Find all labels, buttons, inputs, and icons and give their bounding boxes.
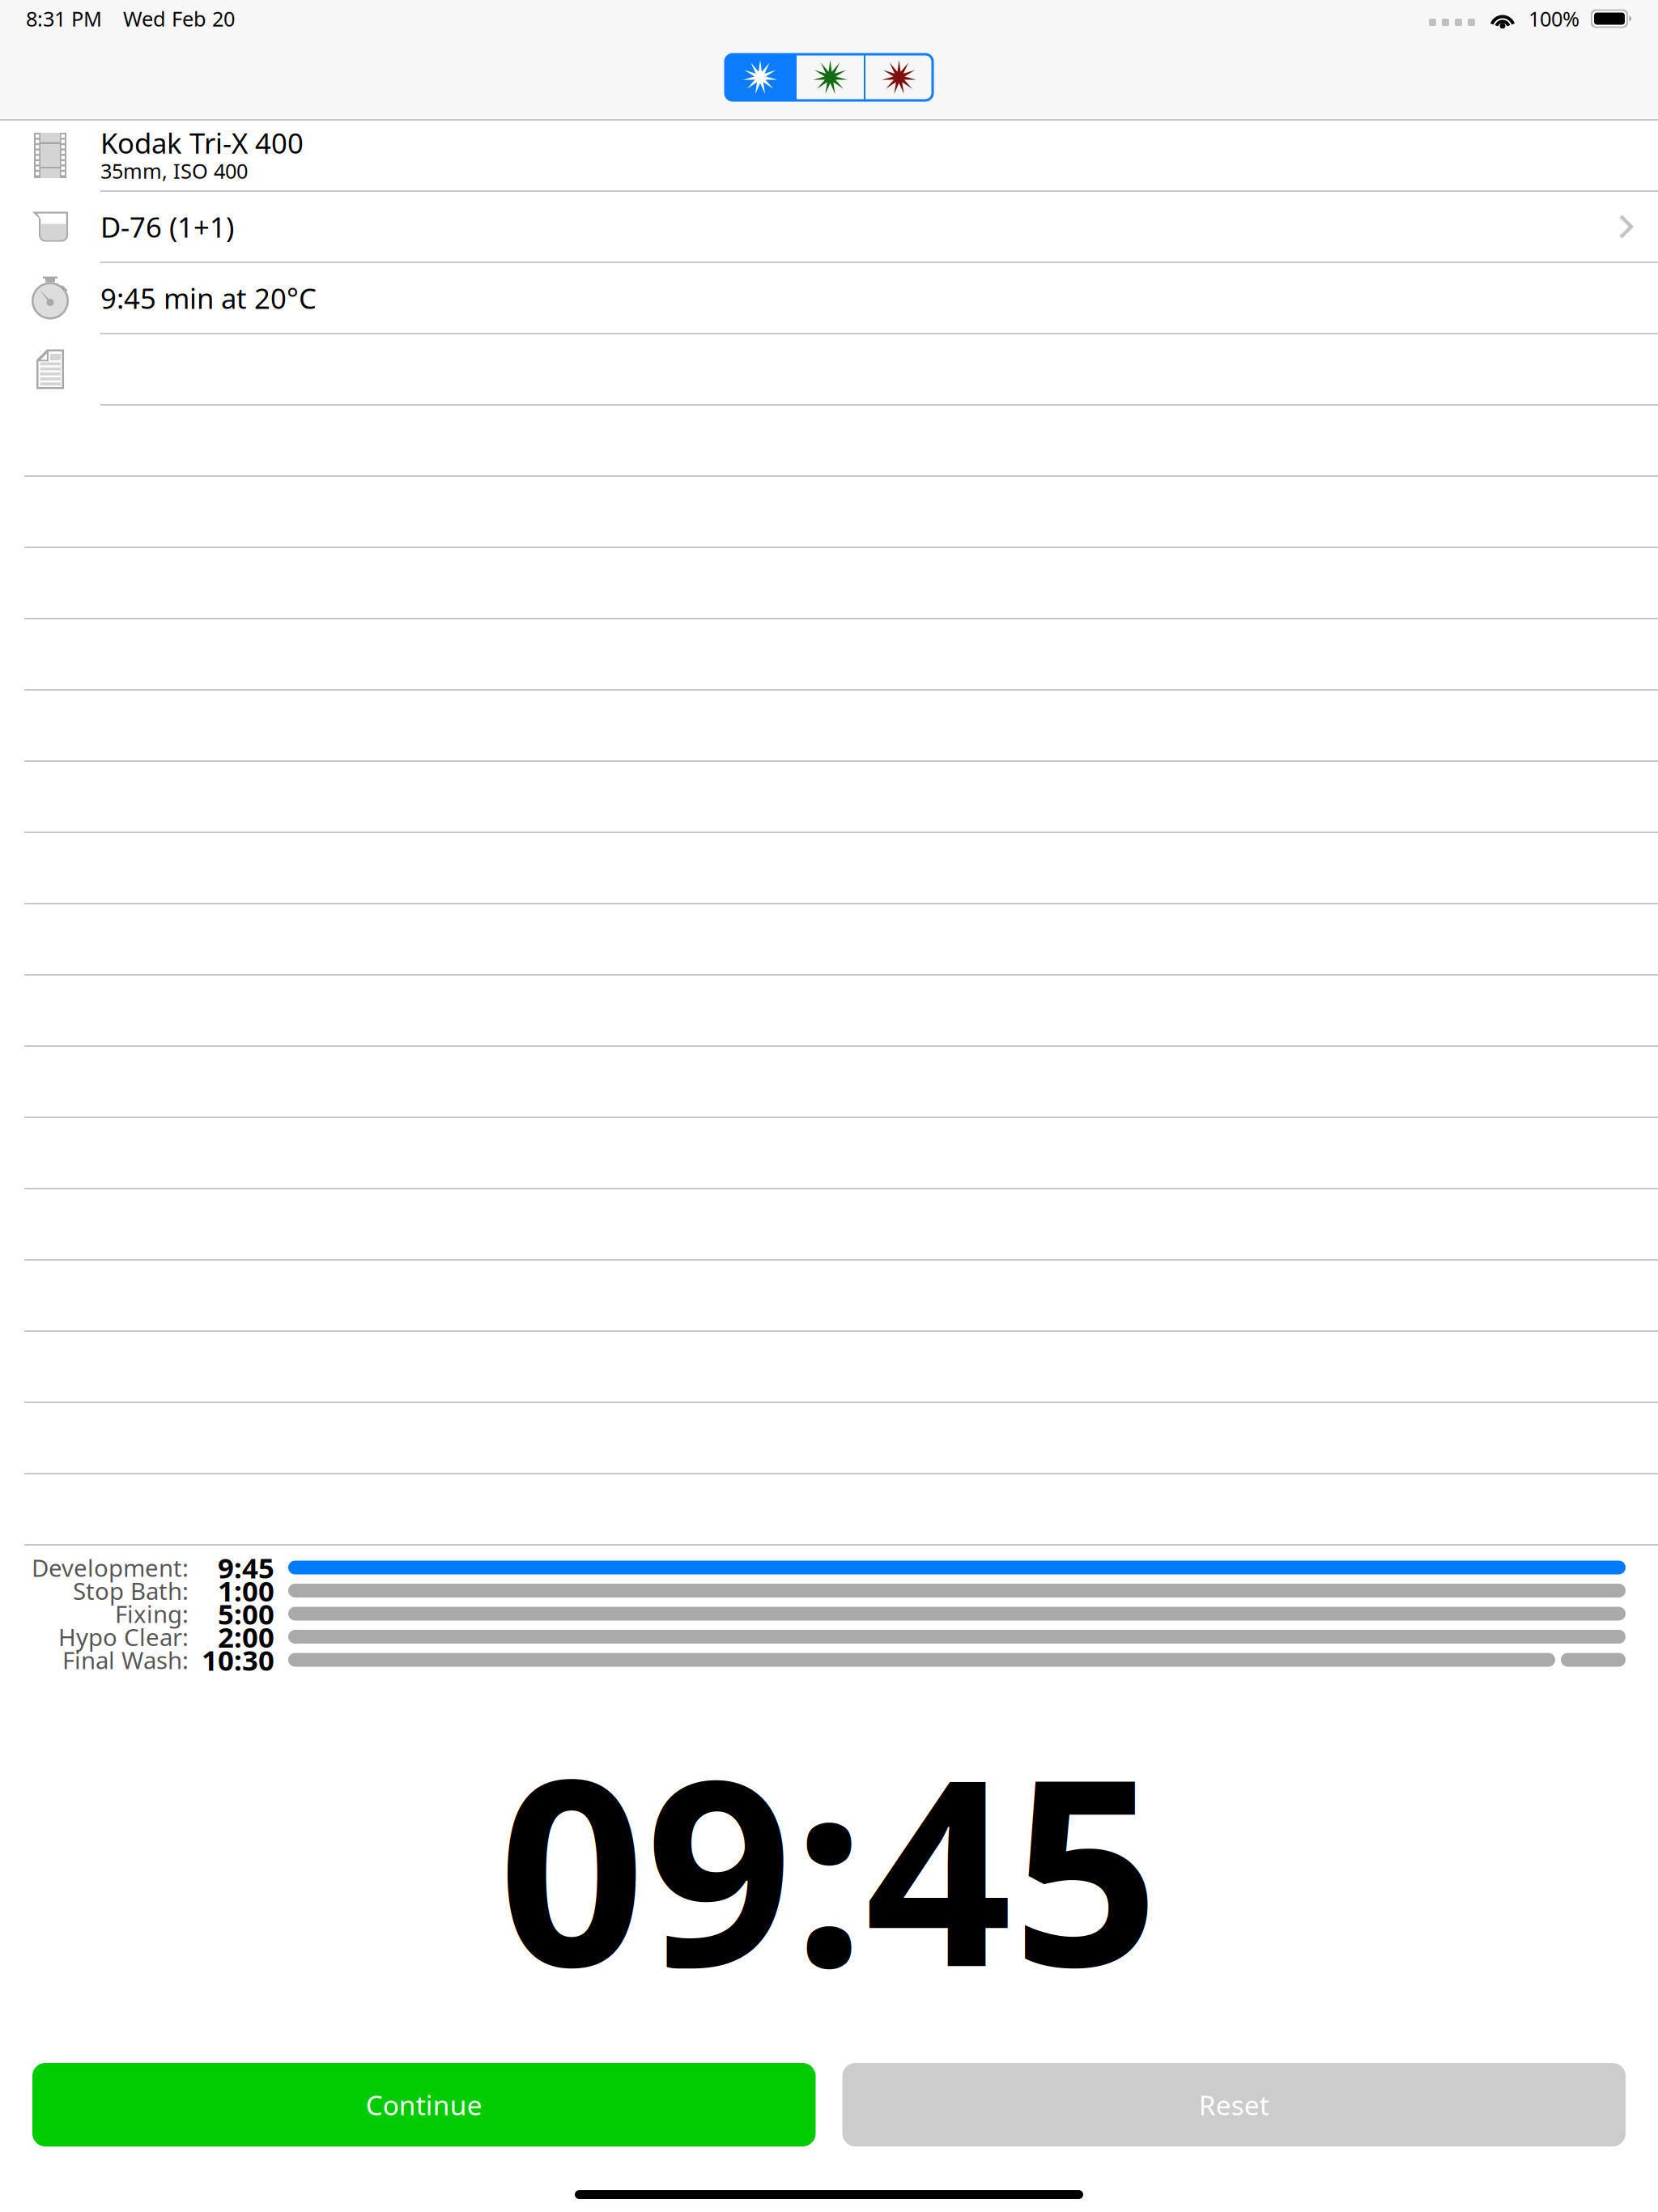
button[interactable]: Red safelight (865, 54, 933, 100)
staticText: Fixing: (115, 1598, 189, 1629)
staticText: 9:45 min at 20°C (100, 279, 317, 317)
button[interactable]: Notes (0, 334, 1658, 404)
button[interactable]: Continue (32, 2063, 816, 2146)
staticText: 1:00 (218, 1572, 274, 1609)
button[interactable]: 9:45 min at 20°C (0, 263, 1658, 333)
staticText: 10:30 (202, 1641, 274, 1678)
staticText: Development: (32, 1552, 189, 1583)
staticText: 35mm, ISO 400 (100, 157, 248, 184)
button[interactable]: D-76 (1+1) (0, 192, 1658, 262)
staticText: Continue (366, 2087, 482, 2123)
button[interactable]: Reset (842, 2063, 1626, 2146)
staticText: Stop Bath: (73, 1575, 189, 1606)
staticText: Kodak Tri-X 400 (100, 124, 304, 161)
staticText: Final Wash: (62, 1644, 189, 1676)
button[interactable]: Green safelight (797, 54, 864, 100)
staticText: Wed Feb 20 (123, 5, 235, 32)
staticText: 100% (1528, 5, 1579, 32)
staticText: Hypo Clear: (58, 1621, 189, 1653)
staticText: Reset (1199, 2087, 1269, 2123)
staticText: 5:00 (218, 1595, 274, 1632)
staticText: 2:00 (218, 1618, 274, 1655)
staticText: D-76 (1+1) (100, 208, 234, 245)
staticText: 9:45 (218, 1549, 274, 1586)
staticText: 09:45 (498, 1696, 1160, 2037)
button[interactable]: White safelight (725, 54, 795, 100)
button[interactable]: Kodak Tri-X 400 (0, 121, 1658, 190)
staticText: 8:31 PM (26, 5, 102, 32)
